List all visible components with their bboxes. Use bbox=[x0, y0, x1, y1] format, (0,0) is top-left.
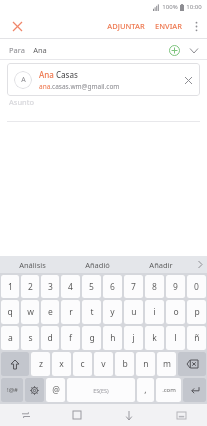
button[interactable]: A bbox=[7, 63, 200, 96]
button[interactable]: Inicio bbox=[51, 404, 103, 426]
staticText: l bbox=[174, 332, 177, 344]
button[interactable]: i bbox=[145, 300, 164, 324]
button[interactable]: Ajustes bbox=[25, 378, 44, 402]
button[interactable]: Añadió bbox=[65, 256, 129, 273]
staticText: Asunto bbox=[9, 97, 34, 107]
staticText: k bbox=[152, 332, 157, 344]
staticText: f bbox=[69, 332, 72, 344]
button[interactable]: f bbox=[61, 326, 80, 350]
button[interactable]: j bbox=[124, 326, 143, 350]
button[interactable]: ADJUNTAR bbox=[102, 17, 150, 35]
staticText: ENVIAR bbox=[155, 21, 182, 31]
button[interactable]: b bbox=[115, 352, 134, 376]
staticText: b bbox=[122, 358, 128, 370]
button[interactable]: Más sugerencias bbox=[193, 256, 207, 273]
staticText: t bbox=[90, 306, 94, 318]
button[interactable]: Quitar destinatario bbox=[181, 73, 195, 87]
button[interactable]: .com bbox=[156, 378, 181, 402]
button[interactable]: a bbox=[1, 326, 19, 350]
button[interactable]: 1 bbox=[1, 275, 19, 298]
button[interactable]: 7 bbox=[124, 275, 143, 298]
staticText: d bbox=[47, 332, 53, 344]
button[interactable]: m bbox=[157, 352, 176, 376]
button[interactable]: Mayúsculas bbox=[1, 352, 29, 376]
staticText: a bbox=[8, 332, 13, 344]
staticText: 2 bbox=[28, 281, 33, 293]
button[interactable]: 0 bbox=[187, 275, 206, 298]
staticText: q bbox=[7, 306, 13, 318]
staticText: Añadió bbox=[85, 260, 110, 270]
button[interactable]: u bbox=[124, 300, 143, 324]
button[interactable]: ñ bbox=[187, 326, 206, 350]
button[interactable]: v bbox=[94, 352, 113, 376]
staticText: i bbox=[153, 306, 156, 318]
button[interactable]: Expandir bbox=[186, 42, 202, 58]
button[interactable]: y bbox=[103, 300, 122, 324]
staticText: x bbox=[59, 358, 64, 370]
staticText: 6 bbox=[110, 281, 115, 293]
button[interactable]: Más opciones bbox=[187, 17, 205, 35]
button[interactable]: l bbox=[166, 326, 185, 350]
button[interactable]: s bbox=[21, 326, 39, 350]
button[interactable]: Análisis bbox=[0, 256, 65, 273]
staticText: !@# bbox=[7, 386, 18, 394]
staticText: 3 bbox=[48, 281, 53, 293]
staticText: Ana bbox=[33, 45, 47, 55]
staticText: j bbox=[132, 332, 135, 344]
button[interactable]: k bbox=[145, 326, 164, 350]
staticText: , bbox=[144, 384, 147, 396]
button[interactable]: ES(ES) bbox=[67, 378, 135, 402]
staticText: y bbox=[110, 306, 115, 318]
button[interactable]: w bbox=[21, 300, 39, 324]
button[interactable]: 5 bbox=[82, 275, 101, 298]
staticText: ana.casas.wm@gmail.com bbox=[39, 82, 120, 91]
button[interactable]: g bbox=[82, 326, 101, 350]
staticText: z bbox=[39, 358, 43, 370]
button[interactable]: 6 bbox=[103, 275, 122, 298]
button[interactable]: 9 bbox=[166, 275, 185, 298]
button[interactable]: h bbox=[103, 326, 122, 350]
button[interactable]: n bbox=[136, 352, 155, 376]
staticText: 4 bbox=[68, 281, 73, 293]
button[interactable]: Añadir contacto bbox=[166, 42, 182, 58]
button[interactable]: Intro bbox=[183, 378, 206, 402]
button[interactable]: @ bbox=[46, 378, 65, 402]
button[interactable]: Cerrar bbox=[6, 15, 28, 37]
button[interactable]: c bbox=[73, 352, 92, 376]
staticText: @ bbox=[52, 384, 60, 396]
staticText: n bbox=[143, 358, 149, 370]
button[interactable]: Retroceso bbox=[178, 352, 206, 376]
button[interactable]: z bbox=[31, 352, 50, 376]
button[interactable]: Añadir bbox=[129, 256, 193, 273]
button[interactable]: x bbox=[52, 352, 71, 376]
staticText: 7 bbox=[131, 281, 136, 293]
button[interactable]: q bbox=[1, 300, 19, 324]
button[interactable]: o bbox=[166, 300, 185, 324]
button[interactable]: Teclado bbox=[155, 404, 207, 426]
staticText: 5 bbox=[89, 281, 94, 293]
staticText: w bbox=[27, 306, 34, 318]
button[interactable]: 8 bbox=[145, 275, 164, 298]
staticText: 8 bbox=[152, 281, 157, 293]
staticText: h bbox=[110, 332, 116, 344]
button[interactable]: 4 bbox=[61, 275, 80, 298]
staticText: 0 bbox=[194, 281, 199, 293]
button[interactable]: , bbox=[137, 378, 154, 402]
staticText: c bbox=[80, 358, 85, 370]
button[interactable]: Símbolos bbox=[1, 378, 23, 402]
staticText: s bbox=[28, 332, 33, 344]
button[interactable]: 3 bbox=[41, 275, 59, 298]
button[interactable]: Recientes bbox=[0, 404, 51, 426]
button[interactable]: 2 bbox=[21, 275, 39, 298]
staticText: p bbox=[194, 306, 200, 318]
button[interactable]: p bbox=[187, 300, 206, 324]
staticText: Ana Casas bbox=[39, 69, 78, 80]
staticText: .com bbox=[162, 386, 176, 394]
staticText: 1 bbox=[8, 281, 13, 293]
button[interactable]: e bbox=[41, 300, 59, 324]
button[interactable]: r bbox=[61, 300, 80, 324]
button[interactable]: ENVIAR bbox=[150, 17, 187, 35]
button[interactable]: d bbox=[41, 326, 59, 350]
button[interactable]: Ocultar teclado bbox=[103, 404, 155, 426]
button[interactable]: t bbox=[82, 300, 101, 324]
